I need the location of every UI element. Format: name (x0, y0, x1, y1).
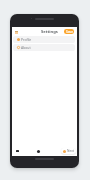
button[interactable]: Home (15, 149, 19, 153)
staticText: About (21, 45, 31, 50)
staticText: Next (67, 149, 74, 153)
button[interactable]: About (13, 44, 75, 51)
button[interactable]: Save (64, 29, 74, 34)
staticText: Save (66, 30, 73, 34)
button[interactable]: Menu (13, 29, 19, 35)
button[interactable]: Search (36, 149, 40, 153)
button[interactable]: Profile (13, 36, 75, 43)
staticText: Profile (21, 37, 32, 42)
button[interactable]: Next (61, 148, 76, 154)
staticText: Settings (41, 29, 58, 35)
